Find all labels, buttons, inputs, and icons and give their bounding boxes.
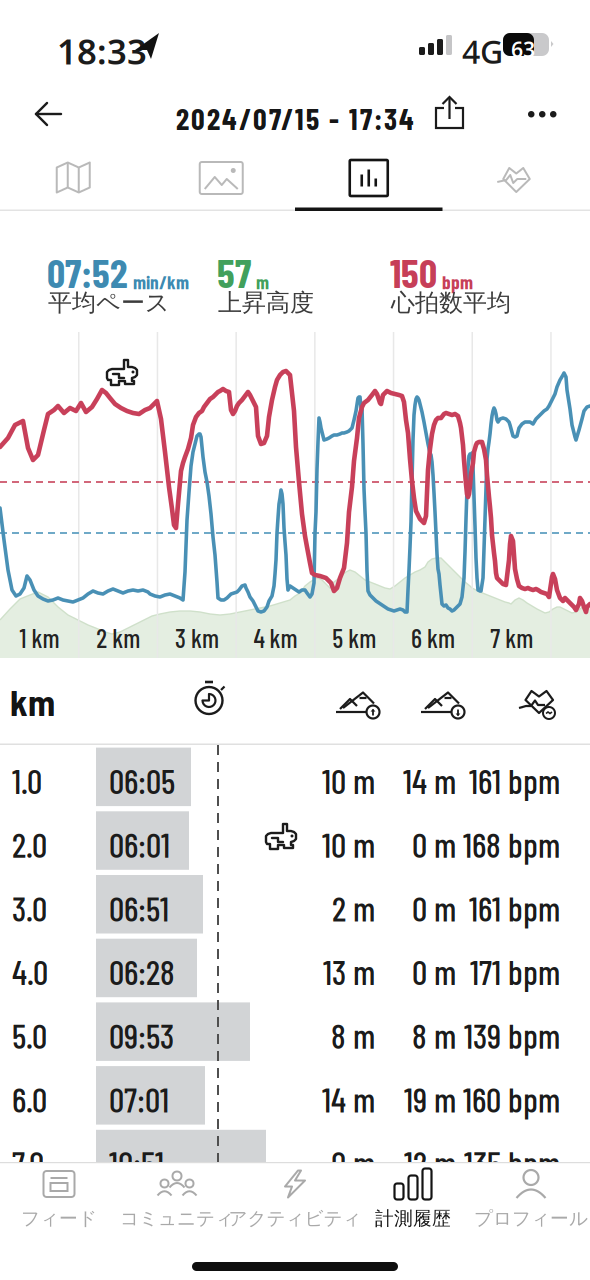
staticText: 7.0 (12, 1142, 44, 1183)
staticText: 168 bpm (463, 824, 560, 864)
staticText: 6.0 (12, 1078, 47, 1119)
staticText: 139 bpm (464, 1015, 560, 1056)
button[interactable]: フィード (0, 1167, 118, 1233)
button[interactable]: 計測履歴 (354, 1167, 472, 1233)
staticText: 8 m (331, 1015, 375, 1056)
staticText: 4 km (254, 622, 298, 653)
staticText: 3 km (175, 622, 219, 653)
staticText: 09:53 (109, 1015, 174, 1056)
staticText: 0 m (412, 824, 456, 864)
staticText: 07:01 (109, 1078, 169, 1119)
staticText: 10:51 (109, 1142, 164, 1183)
staticText: 2 m (332, 887, 375, 928)
button[interactable]: プロフィール (472, 1167, 590, 1233)
button[interactable]: Heart rate (442, 150, 590, 206)
staticText: 2024/07/15 - 17:34 (176, 100, 414, 136)
staticText: 135 bpm (464, 1142, 560, 1183)
staticText: 06:01 (109, 824, 170, 864)
staticText: 計測履歴 (375, 1207, 451, 1230)
staticText: 5.0 (12, 1015, 47, 1056)
button[interactable]: アクティビティ (236, 1167, 354, 1233)
staticText: フィード (21, 1207, 97, 1230)
staticText: 10 m (322, 824, 375, 864)
staticText: 13 m (323, 951, 375, 992)
staticText: 平均ペース (48, 288, 170, 317)
staticText: 63 (511, 35, 535, 63)
staticText: 1.0 (12, 760, 42, 801)
staticText: 3.0 (12, 887, 47, 928)
staticText: 150 (390, 248, 437, 296)
staticText: 4.0 (12, 951, 48, 992)
staticText: プロフィール (474, 1207, 588, 1230)
staticText: 6 km (411, 622, 455, 653)
staticText: 161 bpm (469, 887, 560, 928)
staticText: 心拍数平均 (391, 288, 511, 317)
staticText: m (256, 270, 269, 293)
staticText: 14 m (403, 760, 456, 801)
staticText: bpm (442, 270, 473, 293)
button[interactable]: More (523, 91, 563, 139)
button[interactable]: Share (426, 83, 474, 145)
staticText: 171 bpm (470, 951, 560, 992)
staticText: 18:33 (57, 28, 147, 74)
staticText: 07:52 (47, 248, 128, 296)
staticText: 0 m (331, 1142, 375, 1183)
staticText: 0 m (412, 951, 456, 992)
staticText: アクティビティ (228, 1207, 361, 1230)
staticText: 上昇高度 (218, 288, 314, 317)
button[interactable]: Charts (295, 150, 442, 206)
staticText: 1 km (19, 622, 59, 653)
staticText: 0 m (412, 887, 456, 928)
staticText: 161 bpm (469, 760, 560, 801)
button[interactable]: Map (0, 150, 147, 206)
staticText: 19 m (404, 1078, 456, 1119)
staticText: 4G (462, 30, 503, 72)
staticText: 12 m (404, 1142, 456, 1183)
staticText: 7 km (490, 622, 533, 653)
button[interactable]: Photos (147, 150, 295, 206)
staticText: min/km (133, 270, 189, 293)
button[interactable]: コミュニティ (118, 1167, 236, 1233)
staticText: コミュニティ (120, 1207, 234, 1230)
staticText: 2 km (96, 622, 140, 653)
staticText: 06:28 (109, 951, 175, 992)
staticText: 14 m (322, 1078, 375, 1119)
staticText: 2.0 (12, 824, 47, 864)
staticText: 06:05 (109, 760, 175, 801)
staticText: 10 m (322, 760, 375, 801)
staticText: 8 m (412, 1015, 456, 1056)
staticText: 5 km (332, 622, 376, 653)
button[interactable]: Back (21, 81, 81, 145)
staticText: 06:51 (109, 887, 169, 928)
staticText: 160 bpm (463, 1078, 560, 1119)
staticText: km (10, 680, 55, 723)
staticText: 57 (217, 248, 251, 296)
